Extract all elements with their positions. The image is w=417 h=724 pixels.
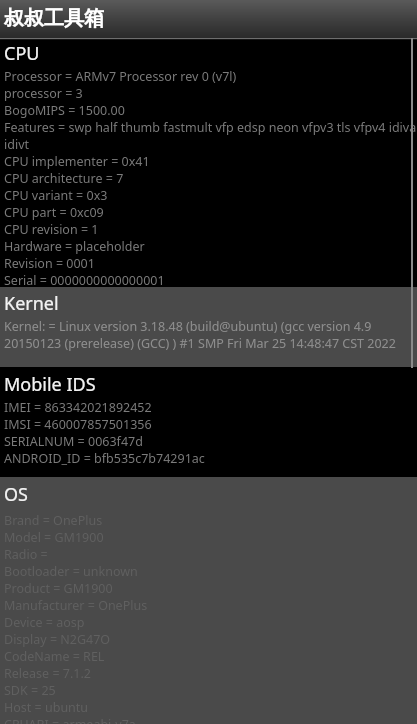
staticText: Hardware = placeholder — [4, 238, 145, 255]
staticText: Brand = OnePlus — [4, 512, 103, 529]
staticText: Features = swp half thumb fastmult vfp e… — [4, 119, 417, 153]
staticText: CodeName = REL — [4, 648, 105, 665]
staticText: Serial = 0000000000000001 — [4, 272, 165, 287]
staticText: Processor = ARMv7 Processor rev 0 (v7l) — [4, 68, 237, 85]
staticText: CPU variant = 0x3 — [4, 187, 108, 204]
staticText: SERIALNUM = 0063f47d — [4, 433, 143, 450]
staticText: Revision = 0001 — [4, 255, 95, 272]
staticText: Mobile IDS — [4, 372, 96, 396]
staticText: IMSI = 460007857501356 — [4, 416, 152, 433]
staticText: CPU architecture = 7 — [4, 170, 124, 187]
staticText: Model = GM1900 — [4, 529, 104, 546]
staticText: CPU revision = 1 — [4, 221, 99, 238]
staticText: Product = GM1900 — [4, 580, 113, 597]
staticText: CPU implementer = 0x41 — [4, 153, 150, 170]
button[interactable]: 叔叔工具箱 — [0, 0, 417, 38]
staticText: CPUABI = armeabi-v7a — [4, 716, 136, 724]
button[interactable]: Kernel — [0, 287, 417, 367]
staticText: 叔叔工具箱 — [4, 7, 104, 31]
staticText: SDK = 25 — [4, 682, 56, 699]
staticText: ANDROID_ID = bfb535c7b74291ac — [4, 450, 205, 467]
staticText: Device = aosp — [4, 614, 85, 631]
staticText: OS — [4, 482, 28, 506]
staticText: Kernel: = Linux version 3.18.48 (build@u… — [4, 318, 396, 352]
staticText: Kernel — [4, 291, 59, 315]
staticText: Manufacturer = OnePlus — [4, 597, 148, 614]
staticText: Bootloader = unknown — [4, 563, 138, 580]
staticText: Display = N2G47O — [4, 631, 111, 648]
button[interactable]: CPU — [0, 38, 417, 287]
staticText: CPU part = 0xc09 — [4, 204, 104, 221]
staticText: BogoMIPS = 1500.00 — [4, 102, 125, 119]
staticText: IMEI = 863342021892452 — [4, 399, 152, 416]
staticText: processor = 3 — [4, 85, 83, 102]
button[interactable]: OS — [0, 477, 417, 724]
staticText: CPU — [4, 41, 40, 65]
staticText: Release = 7.1.2 — [4, 665, 91, 682]
button[interactable]: Mobile IDS — [0, 367, 417, 477]
staticText: Radio = — [4, 546, 51, 563]
staticText: Host = ubuntu — [4, 699, 89, 716]
